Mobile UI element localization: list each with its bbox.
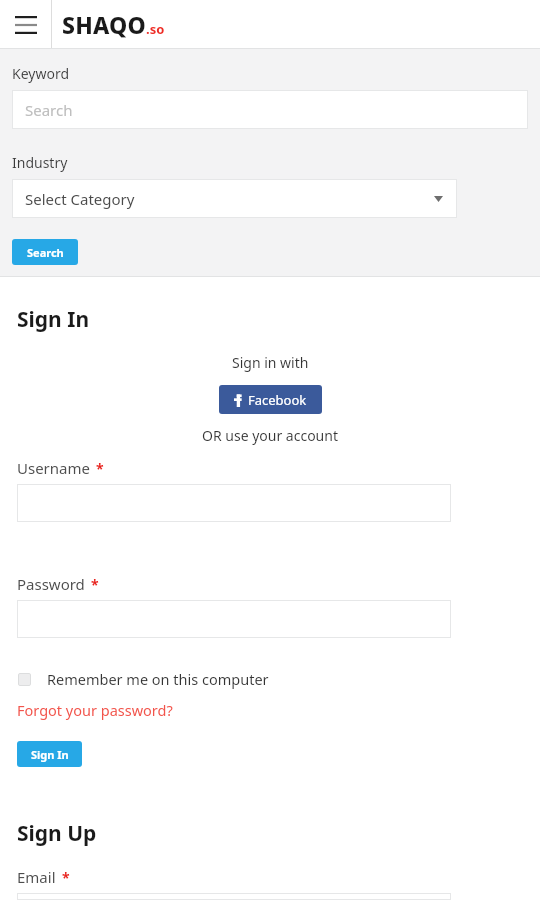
- button[interactable]: [17, 893, 451, 900]
- staticText: Email: [17, 867, 56, 887]
- staticText: *: [91, 575, 99, 594]
- staticText: Facebook: [248, 391, 307, 409]
- staticText: Select Category: [25, 189, 135, 209]
- button[interactable]: Search: [12, 239, 78, 265]
- staticText: Remember me on this computer: [47, 669, 269, 689]
- button[interactable]: Open navigation menu: [0, 0, 51, 49]
- button[interactable]: SHAQO: [62, 9, 171, 40]
- staticText: Keyword: [12, 64, 70, 83]
- staticText: Search: [25, 100, 73, 120]
- button[interactable]: Forgot your password?: [17, 700, 173, 720]
- staticText: SHAQO: [62, 9, 146, 40]
- staticText: *: [62, 868, 70, 887]
- staticText: .so: [146, 20, 165, 38]
- button[interactable]: [17, 484, 451, 522]
- staticText: Forgot your password?: [17, 700, 173, 720]
- staticText: OR use your account: [202, 426, 338, 445]
- staticText: Password: [17, 574, 85, 594]
- button[interactable]: Remember me on this computer: [18, 669, 269, 689]
- staticText: Search: [27, 245, 64, 260]
- button[interactable]: Select Category: [12, 179, 457, 218]
- staticText: Sign In: [31, 747, 69, 762]
- button[interactable]: Sign In: [17, 741, 82, 767]
- staticText: Username: [17, 458, 90, 478]
- button[interactable]: Facebook: [219, 385, 322, 414]
- staticText: Industry: [12, 153, 68, 172]
- button[interactable]: Search: [12, 90, 528, 129]
- staticText: Sign In: [17, 305, 90, 334]
- button[interactable]: [17, 600, 451, 638]
- staticText: Sign in with: [232, 353, 309, 372]
- staticText: *: [96, 459, 104, 478]
- staticText: Sign Up: [17, 819, 97, 848]
